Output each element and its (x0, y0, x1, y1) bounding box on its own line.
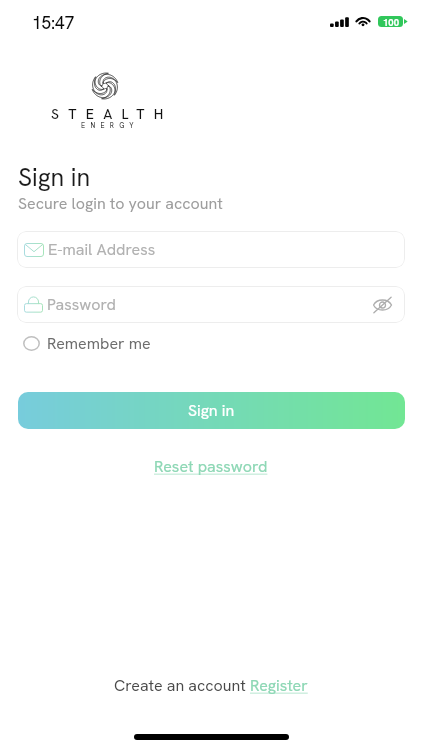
staticText: Password (47, 294, 116, 315)
staticText: Sign in (188, 400, 235, 421)
staticText: Create an account (114, 675, 250, 696)
button[interactable]: Reset password (151, 454, 271, 479)
button[interactable]: Show password (369, 292, 395, 318)
button[interactable]: Remember me (21, 330, 153, 357)
staticText: STEALTH (51, 105, 173, 123)
staticText: 15:47 (32, 12, 75, 34)
staticText: Secure login to your account (18, 193, 223, 214)
button[interactable]: Sign in (18, 392, 405, 429)
staticText: 100 (383, 16, 399, 27)
staticText: ENERGY (81, 121, 139, 130)
button[interactable]: Register (250, 675, 308, 696)
button[interactable]: E-mail Address (17, 231, 405, 268)
staticText: Sign in (18, 161, 91, 194)
staticText: E-mail Address (48, 239, 156, 260)
staticText: Remember me (47, 333, 151, 354)
button[interactable]: Password (17, 286, 405, 323)
